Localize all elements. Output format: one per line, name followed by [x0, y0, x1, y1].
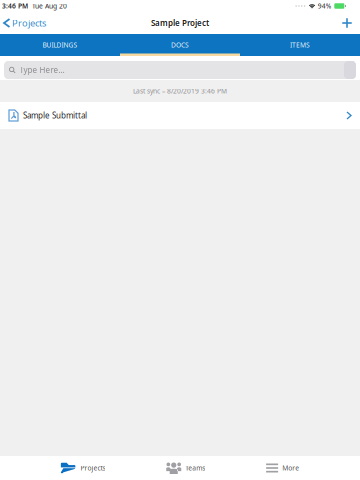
staticText: Teams — [185, 464, 205, 472]
staticText: Last sync – 8/20/2019 3:46 PM — [133, 87, 227, 95]
staticText: Type Here... — [19, 65, 64, 75]
staticText: DOCS — [171, 41, 189, 49]
staticText: Sample Project — [151, 18, 209, 28]
button[interactable]: Projects — [61, 456, 105, 480]
button[interactable]: ITEMS — [240, 34, 360, 56]
staticText: Sample Submittal — [23, 110, 87, 121]
button[interactable]: Add — [334, 12, 360, 34]
staticText: 94% — [318, 2, 332, 10]
staticText: Projects — [12, 17, 46, 29]
button[interactable]: Sample Submittal — [0, 102, 360, 129]
button[interactable]: Teams — [166, 456, 205, 480]
button[interactable]: Projects — [0, 12, 52, 34]
button[interactable]: BUILDINGS — [0, 34, 120, 56]
button[interactable]: More — [266, 456, 299, 480]
staticText: Projects — [80, 464, 105, 472]
staticText: More — [282, 464, 299, 472]
staticText: ITEMS — [290, 41, 310, 49]
staticText: BUILDINGS — [42, 41, 77, 49]
staticText: 3:46 PM — [2, 2, 28, 10]
button[interactable]: Type Here... — [4, 61, 356, 79]
button[interactable]: DOCS — [120, 34, 240, 56]
staticText: Tue Aug 20 — [32, 2, 67, 10]
